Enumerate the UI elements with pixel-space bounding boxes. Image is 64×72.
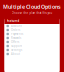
staticText: Settings bbox=[11, 48, 22, 52]
button[interactable]: Offers bbox=[4, 40, 59, 44]
button[interactable]: Rewards bbox=[4, 36, 59, 40]
staticText: Multiple Cloud Options bbox=[3, 3, 61, 10]
button[interactable]: Settings bbox=[4, 48, 59, 52]
button[interactable]: Support bbox=[4, 44, 59, 48]
button[interactable]: Payments bbox=[4, 32, 59, 36]
staticText: Choose the plan that fits you bbox=[11, 11, 52, 15]
button[interactable]: Account bbox=[4, 24, 59, 28]
staticText: Featured bbox=[6, 19, 19, 23]
staticText: Rewards bbox=[11, 36, 21, 40]
button[interactable]: About bbox=[4, 52, 59, 56]
button[interactable]: Orders bbox=[4, 28, 59, 32]
staticText: Account bbox=[11, 24, 22, 28]
staticText: Payments bbox=[11, 32, 23, 36]
staticText: Offers bbox=[11, 40, 19, 44]
staticText: About bbox=[11, 52, 20, 56]
staticText: Orders bbox=[11, 28, 20, 32]
staticText: Support bbox=[11, 44, 22, 48]
